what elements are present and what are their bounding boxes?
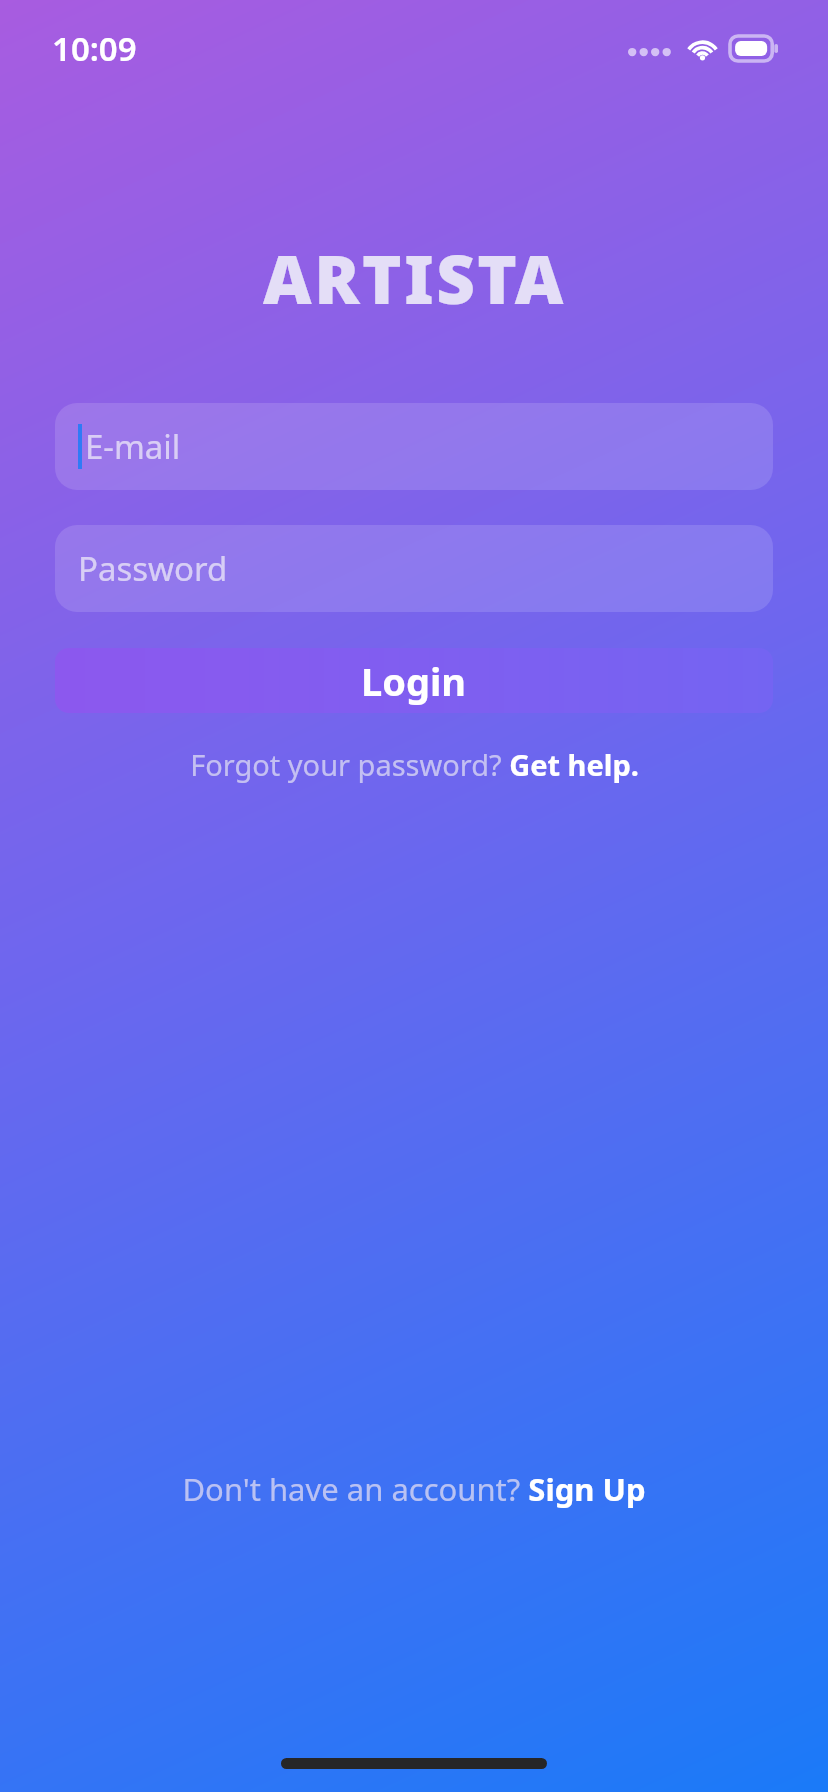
staticText: Password (78, 546, 228, 591)
button[interactable]: Forgot your password? Get help. (55, 745, 773, 784)
button[interactable]: Login (55, 648, 773, 713)
staticText: E-mail (85, 424, 181, 469)
staticText: ARTISTA (263, 232, 566, 323)
staticText: 10:09 (52, 26, 137, 71)
button[interactable]: Don't have an account? Sign Up (40, 1468, 788, 1510)
staticText: Forgot your password? Get help. (190, 745, 639, 784)
button[interactable]: E-mail (55, 403, 773, 490)
staticText: Login (361, 655, 467, 707)
button[interactable]: Password (55, 525, 773, 612)
staticText: Don't have an account? Sign Up (182, 1468, 646, 1510)
